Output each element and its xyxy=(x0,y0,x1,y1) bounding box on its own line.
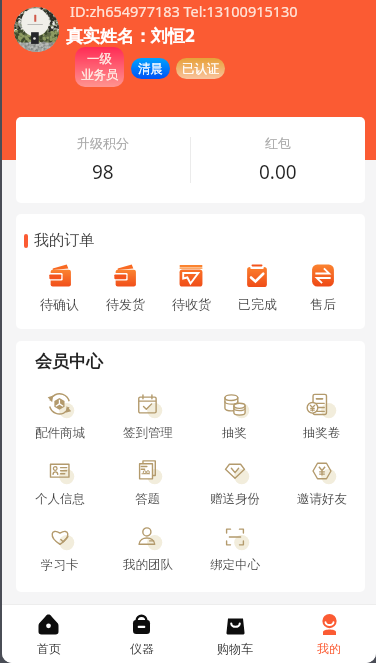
button[interactable]: 首页 xyxy=(2,605,95,663)
staticText: 升级积分 xyxy=(77,135,129,151)
staticText: 首页 xyxy=(37,641,61,656)
staticText: 会员中心 xyxy=(35,351,103,372)
staticText: 真实姓名：刘恒2 xyxy=(66,24,195,47)
staticText: 仪器 xyxy=(130,641,154,656)
staticText: ID:zh654977183 Tel:13100915130 xyxy=(70,1,298,21)
staticText: 待发货 xyxy=(106,296,145,312)
staticText: 业务员 xyxy=(81,67,119,83)
staticText: 已认证 xyxy=(182,61,220,77)
staticText: 待确认 xyxy=(40,296,79,312)
button[interactable]: 购物车 xyxy=(188,605,282,663)
button[interactable]: 答题 xyxy=(104,457,191,507)
button[interactable]: 绑定中心 xyxy=(191,523,278,573)
staticText: 抽奖卷 xyxy=(303,425,341,441)
button[interactable]: 已认证 xyxy=(176,58,225,79)
staticText: 红包 xyxy=(265,135,291,151)
staticText: 我的 xyxy=(317,641,341,656)
button[interactable]: 配件商城 xyxy=(16,391,104,441)
button[interactable]: 赠送身份 xyxy=(191,457,278,507)
button[interactable]: 我的团队 xyxy=(104,523,191,573)
button[interactable]: 邀请好友 xyxy=(278,457,365,507)
staticText: 签到管理 xyxy=(123,425,173,441)
staticText: 答题 xyxy=(135,491,160,507)
button[interactable]: 红包 xyxy=(191,117,365,203)
button[interactable]: 待确认 xyxy=(27,263,92,312)
button[interactable]: 售后 xyxy=(290,263,356,312)
staticText: 邀请好友 xyxy=(297,491,347,507)
staticText: 98 xyxy=(92,159,114,185)
button[interactable]: 个人信息 xyxy=(16,457,104,507)
button[interactable]: 我的 xyxy=(282,605,376,663)
staticText: 购物车 xyxy=(217,641,253,656)
button[interactable]: 升级积分 xyxy=(16,117,190,203)
button[interactable]: 已完成 xyxy=(224,263,290,312)
staticText: 抽奖 xyxy=(222,425,247,441)
staticText: 一级 xyxy=(87,51,112,67)
button[interactable]: 签到管理 xyxy=(104,391,191,441)
staticText: 已完成 xyxy=(238,296,277,312)
staticText: 待收货 xyxy=(172,296,211,312)
staticText: 学习卡 xyxy=(41,557,79,573)
staticText: 我的团队 xyxy=(123,557,173,573)
staticText: 绑定中心 xyxy=(210,557,260,573)
staticText: 配件商城 xyxy=(35,425,85,441)
button[interactable]: 仪器 xyxy=(95,605,188,663)
staticText: 个人信息 xyxy=(35,491,85,507)
staticText: 我的订单 xyxy=(34,231,94,250)
button[interactable]: 一级 xyxy=(75,47,124,87)
button[interactable]: 待发货 xyxy=(92,263,158,312)
button[interactable]: 清晨 xyxy=(131,58,170,79)
staticText: 售后 xyxy=(310,296,336,312)
button[interactable]: Profile photo xyxy=(14,7,59,52)
staticText: 清晨 xyxy=(138,61,163,77)
staticText: 0.00 xyxy=(259,159,297,185)
button[interactable]: 学习卡 xyxy=(16,523,104,573)
button[interactable]: 待收货 xyxy=(158,263,224,312)
button[interactable]: 抽奖 xyxy=(191,391,278,441)
button[interactable]: 抽奖卷 xyxy=(278,391,365,441)
staticText: 赠送身份 xyxy=(210,491,260,507)
